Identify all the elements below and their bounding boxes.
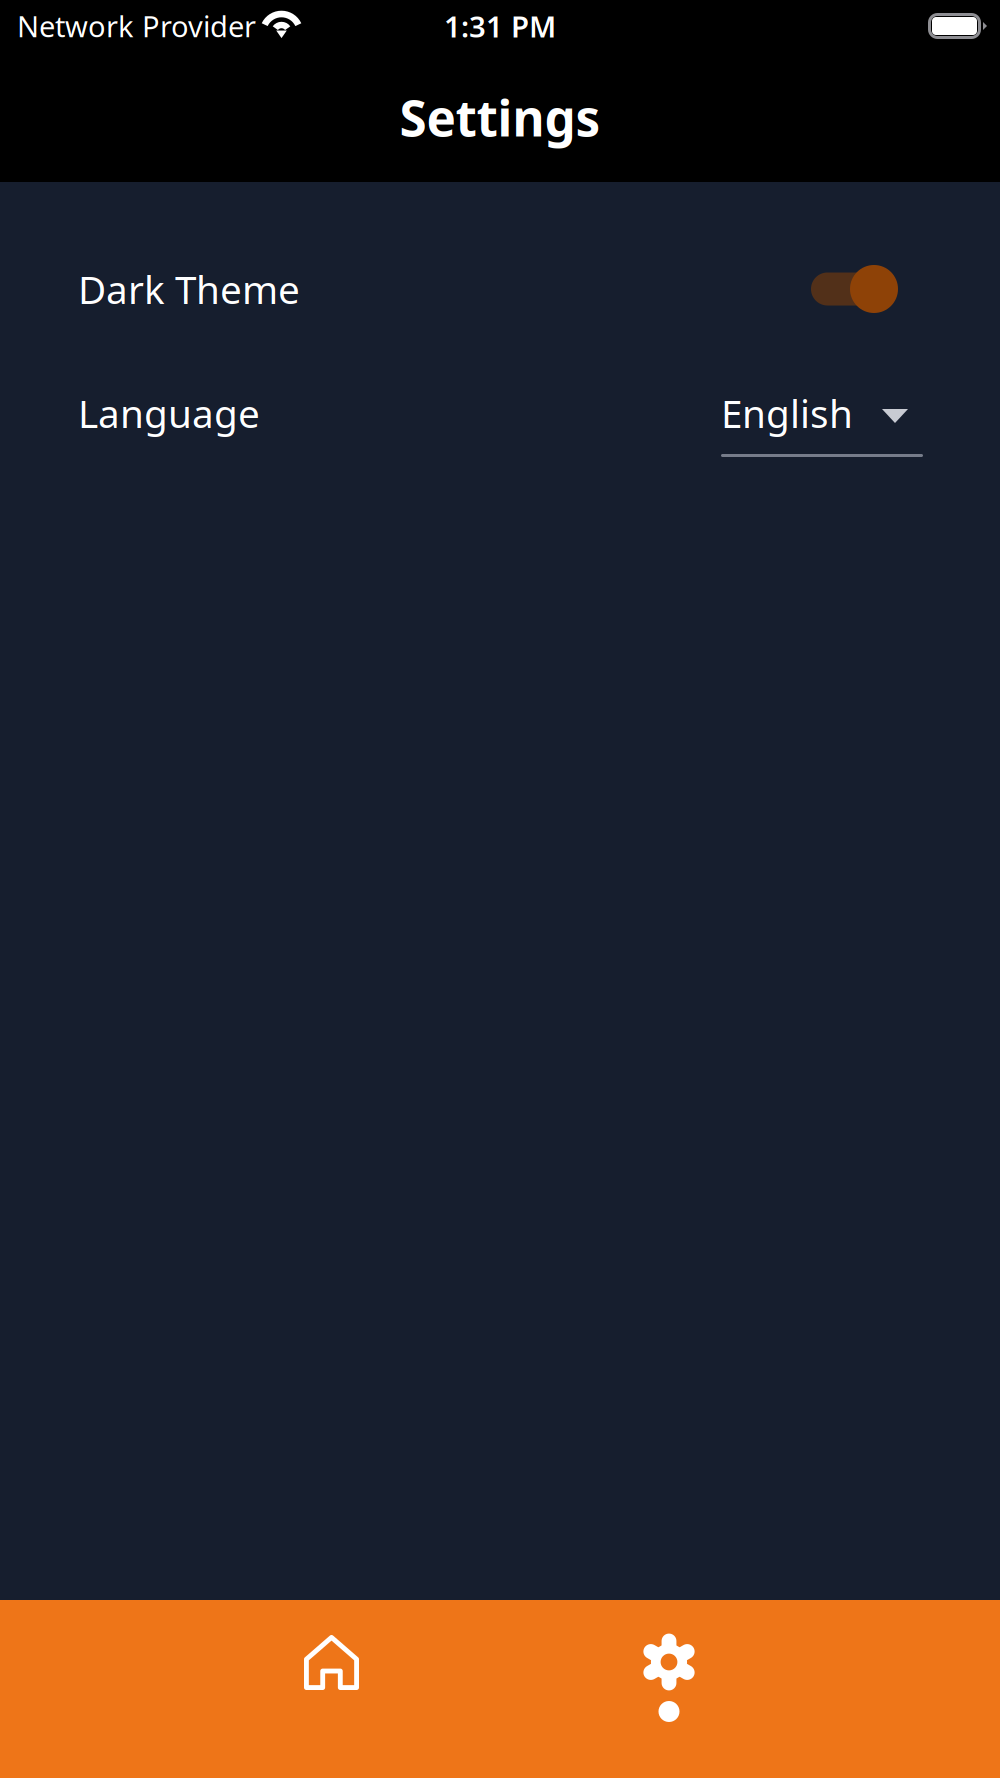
staticText: Dark Theme xyxy=(78,263,300,315)
button[interactable]: Dark Theme xyxy=(811,264,898,314)
staticText: Network Provider xyxy=(17,6,256,46)
button[interactable]: Settings xyxy=(500,1600,1000,1778)
staticText: 1:31 PM xyxy=(444,6,556,45)
staticText: English xyxy=(721,387,853,439)
staticText: Settings xyxy=(399,84,600,150)
button[interactable]: Home xyxy=(0,1600,500,1778)
staticText: Language xyxy=(78,387,260,439)
button[interactable]: English xyxy=(721,390,923,457)
